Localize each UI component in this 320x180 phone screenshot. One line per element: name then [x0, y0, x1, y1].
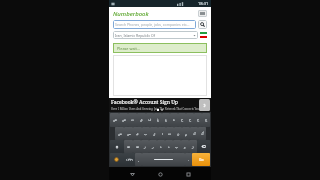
staticText: . — [188, 158, 189, 162]
button[interactable]: ش — [115, 127, 124, 140]
button[interactable]: ژ — [189, 140, 197, 153]
button[interactable]: ذ — [157, 140, 165, 153]
button[interactable]: Change language — [110, 153, 123, 166]
staticText: س — [127, 132, 131, 136]
button[interactable]: پ — [173, 140, 181, 153]
button[interactable]: Shift — [110, 140, 124, 153]
button[interactable]: ن — [174, 127, 182, 140]
staticText: ص — [122, 118, 126, 122]
staticText: ؟١٢٣ — [126, 158, 133, 162]
staticText: Please wait... — [117, 46, 141, 51]
staticText: ر — [152, 145, 154, 149]
staticText: ع — [165, 118, 167, 122]
button[interactable]: ر — [149, 140, 157, 153]
staticText: ز — [144, 145, 146, 149]
staticText: Over 1 Billion Users And Growing. Join T… — [111, 107, 200, 111]
button[interactable]: س — [124, 127, 133, 140]
button[interactable]: Go — [192, 153, 210, 166]
button[interactable]: Space — [142, 153, 185, 166]
button[interactable]: ا — [158, 127, 166, 140]
button[interactable]: ؟١٢٣ — [123, 153, 135, 166]
button[interactable]: ظ — [124, 140, 133, 153]
button[interactable]: ع — [162, 113, 170, 127]
button[interactable]: ض — [110, 113, 119, 127]
button[interactable]: Search Phones, people, jobs, companies e… — [115, 20, 194, 29]
button[interactable]: Home — [155, 169, 165, 179]
button[interactable]: خ — [178, 113, 186, 127]
button[interactable]: Menu — [111, 2, 115, 6]
staticText: ح — [189, 118, 192, 122]
staticText: چ — [205, 118, 208, 122]
button[interactable]: ق — [137, 113, 146, 127]
staticText: Search Phones, people, jobs, companies e… — [115, 22, 190, 27]
button[interactable]: غ — [154, 113, 162, 127]
button[interactable]: ه — [170, 113, 178, 127]
staticText: ذ — [160, 145, 162, 149]
button[interactable]: Recents — [183, 169, 193, 179]
button[interactable]: Menu — [198, 10, 207, 17]
staticText: ن — [177, 132, 180, 136]
button[interactable]: Next ad — [199, 99, 210, 111]
staticText: ا — [162, 132, 163, 136]
staticText: ض — [113, 118, 117, 122]
button[interactable]: Numberbook — [113, 10, 149, 18]
staticText: Go — [199, 157, 204, 162]
staticText: ظ — [127, 145, 130, 149]
staticText: پ — [175, 145, 179, 149]
button[interactable]: م — [182, 127, 190, 140]
staticText: Iran, Islamic Republic Of — [115, 33, 155, 38]
button[interactable]: , — [135, 153, 142, 166]
button[interactable]: گ — [198, 127, 206, 140]
button[interactable]: ج — [194, 113, 202, 127]
button[interactable]: ی — [133, 127, 142, 140]
button[interactable]: ک — [190, 127, 198, 140]
button[interactable]: Search — [198, 20, 207, 29]
staticText: م — [185, 132, 187, 136]
staticText: و — [184, 145, 186, 149]
button[interactable]: د — [165, 140, 173, 153]
staticText: گ — [201, 132, 204, 136]
staticText: خ — [181, 118, 184, 122]
button[interactable]: ص — [119, 113, 128, 127]
button[interactable]: ز — [141, 140, 149, 153]
staticText: ط — [136, 145, 139, 149]
staticText: ژ — [192, 145, 194, 149]
staticText: ی — [136, 132, 139, 136]
button[interactable]: ل — [150, 127, 158, 140]
staticText: ه — [173, 118, 175, 122]
staticText: ت — [168, 132, 172, 136]
staticText: غ — [157, 118, 159, 122]
button[interactable]: Backspace — [197, 140, 210, 153]
button[interactable]: . — [185, 153, 192, 166]
button[interactable]: و — [181, 140, 189, 153]
staticText: Facebook® Account Sign Up — [111, 99, 178, 106]
button[interactable]: چ — [202, 113, 210, 127]
staticText: ق — [140, 118, 143, 122]
button[interactable]: Country flag — [200, 32, 207, 38]
staticText: ث — [131, 118, 135, 122]
button[interactable]: ت — [166, 127, 174, 140]
button[interactable]: ف — [146, 113, 154, 127]
staticText: ب — [144, 132, 148, 136]
staticText: , — [138, 158, 139, 162]
button[interactable]: Iran, Islamic Republic Of — [115, 31, 196, 39]
staticText: د — [168, 145, 170, 149]
staticText: ف — [148, 118, 152, 122]
staticText: ک — [193, 132, 196, 136]
staticText: ش — [118, 132, 122, 136]
staticText: 18:31 — [198, 1, 209, 6]
button[interactable]: ط — [133, 140, 141, 153]
button[interactable]: ث — [128, 113, 137, 127]
button[interactable]: Back — [127, 169, 137, 179]
staticText: ج — [197, 118, 200, 122]
button[interactable]: ب — [142, 127, 150, 140]
staticText: ل — [153, 132, 156, 136]
button[interactable]: ح — [186, 113, 194, 127]
